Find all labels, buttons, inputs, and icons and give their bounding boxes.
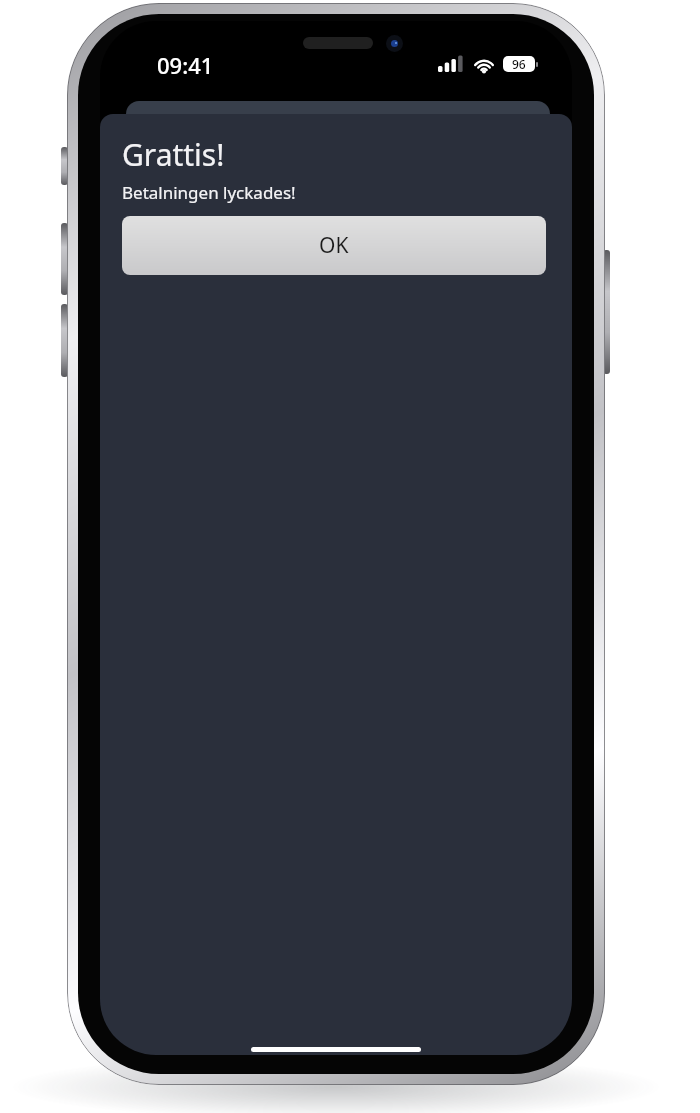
staticText: Grattis! — [122, 134, 225, 175]
staticText: 09:41 — [157, 50, 214, 80]
staticText: Betalningen lyckades! — [122, 181, 296, 204]
button[interactable]: OK — [122, 216, 546, 275]
staticText: 96 — [512, 56, 526, 72]
staticText: OK — [319, 231, 349, 260]
